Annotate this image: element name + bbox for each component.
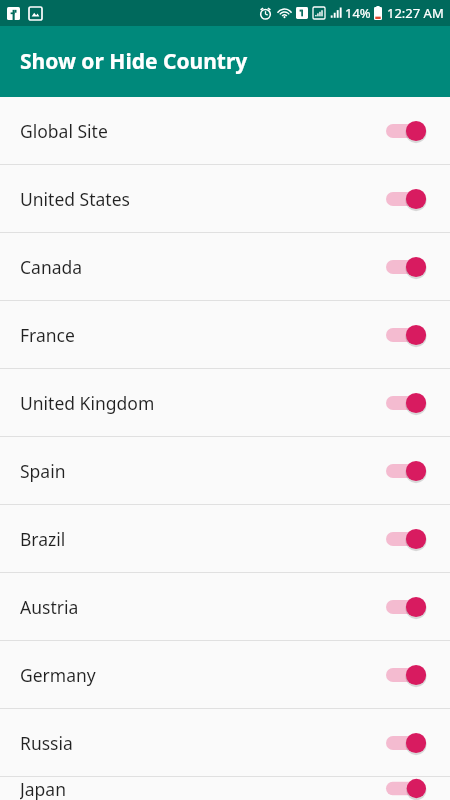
button[interactable]: United States xyxy=(0,165,450,232)
button[interactable]: Toggle country visibility xyxy=(386,119,426,143)
button[interactable]: Toggle country visibility xyxy=(386,255,426,279)
button[interactable]: Toggle country visibility xyxy=(386,731,426,755)
staticText: United Kingdom xyxy=(20,391,386,415)
staticText: Global Site xyxy=(20,119,386,143)
button[interactable]: Toggle country visibility xyxy=(386,777,426,800)
button[interactable]: United Kingdom xyxy=(0,369,450,436)
button[interactable]: Toggle country visibility xyxy=(386,595,426,619)
staticText: Spain xyxy=(20,459,386,483)
button[interactable]: France xyxy=(0,301,450,368)
staticText: Show or Hide Country xyxy=(20,47,248,76)
staticText: France xyxy=(20,323,386,347)
button[interactable]: Austria xyxy=(0,573,450,640)
button[interactable]: Toggle country visibility xyxy=(386,187,426,211)
staticText: 14% xyxy=(345,4,371,22)
button[interactable]: Canada xyxy=(0,233,450,300)
staticText: Germany xyxy=(20,663,386,687)
button[interactable]: Russia xyxy=(0,709,450,776)
staticText: United States xyxy=(20,187,386,211)
staticText: Austria xyxy=(20,595,386,619)
staticText: Canada xyxy=(20,255,386,279)
button[interactable]: Toggle country visibility xyxy=(386,663,426,687)
button[interactable]: Brazil xyxy=(0,505,450,572)
button[interactable]: Toggle country visibility xyxy=(386,323,426,347)
button[interactable]: Global Site xyxy=(0,97,450,164)
button[interactable]: Toggle country visibility xyxy=(386,527,426,551)
button[interactable]: Spain xyxy=(0,437,450,504)
button[interactable]: Toggle country visibility xyxy=(386,459,426,483)
staticText: Brazil xyxy=(20,527,386,551)
staticText: Russia xyxy=(20,731,386,755)
button[interactable]: Japan xyxy=(0,777,450,800)
button[interactable]: Germany xyxy=(0,641,450,708)
staticText: 12:27 AM xyxy=(387,4,444,22)
staticText: Japan xyxy=(20,777,386,800)
button[interactable]: Toggle country visibility xyxy=(386,391,426,415)
